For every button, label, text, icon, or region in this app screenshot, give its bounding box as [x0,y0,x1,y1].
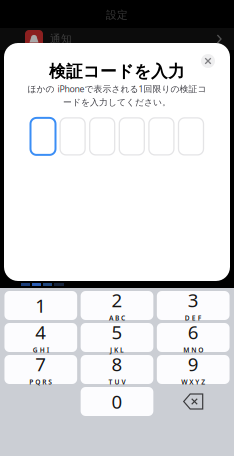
button[interactable]: 9 [157,355,229,384]
staticText: 8 [111,352,122,376]
staticText: W X Y Z [181,377,205,386]
staticText: 2 [111,288,122,312]
staticText: ほかの iPhoneで表示される1回限りの検証コ [27,83,206,95]
staticText: J K L [110,345,124,354]
staticText: 0 [111,389,122,414]
staticText: G H I [33,345,49,354]
button[interactable]: Close [198,51,218,71]
button[interactable]: 7 [4,355,77,384]
button[interactable]: 5 [81,323,153,352]
button[interactable]: Delete [157,387,229,416]
staticText: P Q R S [29,377,52,386]
button[interactable]: 0 [81,387,153,416]
staticText: 4 [35,320,46,344]
staticText: M N O [183,345,203,354]
button[interactable]: 2 [81,291,153,320]
staticText: ードを入力してください。 [63,97,171,108]
staticText: 検証コードを入力 [49,61,185,82]
button[interactable]: 4 [4,323,77,352]
staticText: T U V [108,377,125,386]
staticText: 5 [111,320,122,344]
staticText: 通知 [50,32,72,45]
staticText: D E F [185,313,202,322]
button[interactable]: 3 [157,291,229,320]
button[interactable]: 6 [157,323,229,352]
staticText: A B C [109,313,125,322]
staticText: 9 [188,352,199,376]
staticText: 1 [35,293,46,318]
button[interactable]: 8 [81,355,153,384]
staticText: 7 [35,352,46,376]
button[interactable]: 1 [4,291,77,320]
staticText: 3 [188,288,199,312]
staticText: 設定 [106,8,128,21]
staticText: 6 [188,320,199,344]
